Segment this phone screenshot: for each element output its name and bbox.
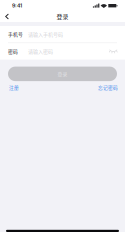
button[interactable]: Back bbox=[0, 10, 15, 23]
button[interactable]: 忘记密码 bbox=[97, 82, 119, 93]
staticText: 请输入密码 bbox=[28, 48, 53, 55]
button[interactable]: Show password bbox=[109, 45, 118, 57]
staticText: 忘记密码 bbox=[98, 84, 118, 91]
button[interactable]: 登录 bbox=[8, 67, 117, 81]
staticText: 注册 bbox=[9, 84, 19, 91]
staticText: 请输入手机号码 bbox=[28, 31, 63, 38]
staticText: 密码 bbox=[8, 48, 18, 55]
staticText: 登录 bbox=[56, 12, 68, 21]
staticText: 手机号 bbox=[8, 31, 23, 38]
staticText: 登录 bbox=[57, 70, 67, 77]
button[interactable]: 注册 bbox=[8, 82, 20, 93]
staticText: 9:41 bbox=[12, 2, 22, 9]
